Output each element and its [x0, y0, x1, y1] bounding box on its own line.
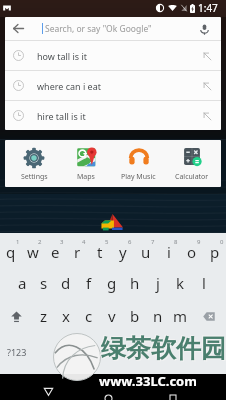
button[interactable]: l [192, 265, 215, 298]
button[interactable]: x [55, 298, 77, 330]
staticText: c [85, 306, 93, 326]
staticText: i [167, 242, 171, 262]
button[interactable]: c [77, 298, 100, 330]
staticText: j [156, 273, 160, 293]
button[interactable]: g [100, 265, 123, 298]
button[interactable]: Recent apps [163, 388, 183, 400]
staticText: Calculator [175, 172, 209, 182]
button[interactable]: Play Music [112, 140, 165, 187]
button[interactable]: Insert suggestion [200, 79, 214, 93]
staticText: 绿茶软件园 [101, 333, 226, 364]
staticText: 1:47 [198, 1, 218, 15]
staticText: 1 [16, 238, 20, 246]
staticText: y [119, 242, 127, 262]
button[interactable]: 6 [111, 233, 134, 265]
button[interactable]: Voice search [196, 21, 212, 37]
staticText: Maps [77, 172, 95, 182]
staticText: w [27, 242, 39, 262]
staticText: l [202, 273, 206, 293]
button[interactable]: Back [10, 20, 27, 37]
button[interactable]: j [146, 265, 169, 298]
staticText: how tall is it [37, 50, 88, 62]
staticText: t [97, 242, 103, 262]
staticText: v [108, 306, 116, 326]
button[interactable]: Insert suggestion [200, 49, 214, 63]
staticText: a [18, 273, 27, 293]
staticText: Play Music [121, 172, 156, 182]
button[interactable]: 9 [180, 233, 203, 265]
staticText: s [40, 273, 48, 293]
button[interactable]: a [11, 265, 33, 298]
staticText: k [176, 273, 185, 293]
staticText: f [86, 273, 92, 293]
staticText: www.33LC.com [99, 372, 197, 390]
staticText: z [40, 306, 48, 326]
staticText: o [187, 242, 197, 262]
staticText: 3 [60, 238, 64, 246]
staticText: b [130, 306, 140, 326]
button[interactable]: Settings [8, 140, 60, 187]
button[interactable]: 8 [157, 233, 180, 265]
staticText: x [62, 306, 70, 326]
staticText: q [6, 242, 16, 262]
button[interactable]: d [55, 265, 77, 298]
staticText: u [141, 242, 151, 262]
button[interactable]: s [33, 265, 55, 298]
staticText: Settings [21, 172, 48, 182]
staticText: 9 [197, 238, 201, 246]
button[interactable]: hire tall is it [5, 101, 221, 130]
staticText: r [74, 242, 81, 262]
staticText: 6 [128, 238, 132, 246]
staticText: e [51, 242, 60, 262]
button[interactable]: f [77, 265, 100, 298]
button[interactable]: Home [98, 388, 118, 400]
button[interactable]: z [33, 298, 55, 330]
button[interactable]: Maps [60, 140, 112, 187]
staticText: Search, or say "Ok Google" [45, 23, 152, 35]
button[interactable]: how tall is it [5, 41, 221, 70]
staticText: d [61, 273, 71, 293]
staticText: 7 [151, 238, 155, 246]
button[interactable]: b [123, 298, 146, 330]
button[interactable]: m [169, 298, 192, 330]
staticText: ?123 [7, 346, 27, 358]
button[interactable]: v [100, 298, 123, 330]
staticText: p [210, 242, 220, 262]
staticText: 2 [38, 238, 42, 246]
button[interactable]: Shift [0, 298, 33, 330]
button[interactable]: Insert suggestion [200, 109, 214, 123]
button[interactable]: 1 [0, 233, 22, 265]
staticText: 绿茶软件园 [102, 334, 226, 365]
button[interactable]: Back [38, 381, 58, 400]
button[interactable]: 0 [203, 233, 226, 265]
button[interactable]: Calculator [165, 140, 218, 187]
staticText: 绿茶软件园 [100, 332, 225, 363]
button[interactable]: h [123, 265, 146, 298]
button[interactable]: n [146, 298, 169, 330]
staticText: 5 [105, 238, 109, 246]
button[interactable]: 2 [22, 233, 44, 265]
button[interactable]: 5 [88, 233, 111, 265]
staticText: 4 [82, 238, 86, 246]
button[interactable]: k [169, 265, 192, 298]
staticText: 8 [174, 238, 178, 246]
button[interactable]: Backspace [192, 298, 226, 330]
button[interactable]: 4 [66, 233, 88, 265]
staticText: n [153, 306, 163, 326]
button[interactable]: 3 [44, 233, 66, 265]
button[interactable]: where can i eat [5, 71, 221, 100]
staticText: 0 [220, 238, 224, 246]
staticText: hire tall is it [37, 110, 86, 122]
button[interactable]: Back [5, 17, 221, 40]
staticText: where can i eat [37, 80, 101, 92]
staticText: m [173, 306, 188, 326]
button[interactable]: 7 [134, 233, 157, 265]
staticText: h [130, 273, 140, 293]
button[interactable]: ?123 [0, 330, 34, 374]
staticText: g [107, 273, 117, 293]
